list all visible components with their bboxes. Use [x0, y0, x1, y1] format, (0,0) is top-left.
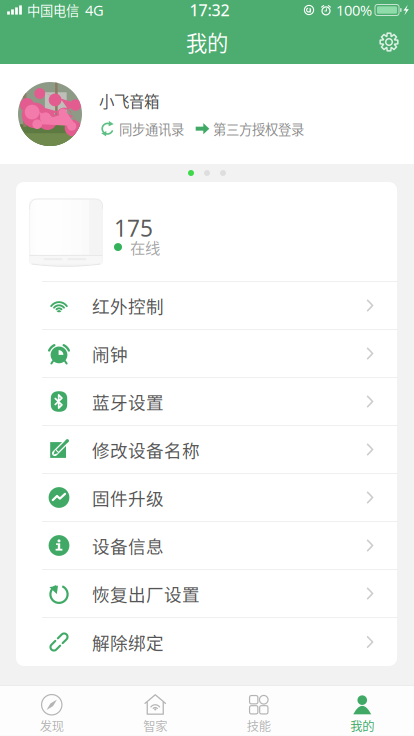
- button[interactable]: 蓝牙设置: [16, 378, 397, 426]
- staticText: 恢复出厂设置: [92, 581, 200, 606]
- staticText: 小飞音箱: [99, 90, 159, 112]
- button[interactable]: 恢复出厂设置: [16, 570, 397, 618]
- staticText: 17:32: [189, 0, 229, 21]
- staticText: 设备信息: [92, 533, 164, 558]
- staticText: 解除绑定: [92, 629, 164, 655]
- button[interactable]: 我的: [310, 686, 414, 736]
- button[interactable]: 设置: [376, 23, 414, 61]
- button[interactable]: 红外控制: [16, 282, 397, 330]
- button[interactable]: 同步通讯录: [99, 119, 184, 138]
- staticText: 发现: [40, 717, 64, 735]
- staticText: 4G: [85, 0, 104, 20]
- staticText: 100%: [336, 0, 372, 20]
- button[interactable]: 闹钟: [16, 330, 397, 378]
- button[interactable]: 固件升级: [16, 474, 397, 522]
- staticText: 我的: [186, 27, 228, 57]
- button[interactable]: 修改设备名称: [16, 426, 397, 474]
- staticText: 智家: [143, 717, 167, 735]
- button[interactable]: 175: [16, 182, 397, 281]
- staticText: 第三方授权登录: [213, 119, 304, 138]
- staticText: 我的: [350, 717, 374, 735]
- button[interactable]: 智家: [103, 686, 207, 736]
- staticText: 同步通讯录: [119, 119, 184, 138]
- staticText: 修改设备名称: [92, 437, 200, 462]
- staticText: 175: [114, 213, 153, 243]
- staticText: 中国电信: [27, 0, 79, 20]
- button[interactable]: 第三方授权登录: [184, 119, 304, 138]
- staticText: 红外控制: [92, 293, 164, 318]
- button[interactable]: 设备信息: [16, 522, 397, 570]
- staticText: 蓝牙设置: [92, 389, 164, 414]
- staticText: 闹钟: [92, 341, 128, 366]
- staticText: 固件升级: [92, 485, 164, 510]
- staticText: 在线: [130, 236, 160, 258]
- staticText: 技能: [247, 717, 271, 735]
- button[interactable]: 技能: [207, 686, 310, 736]
- button[interactable]: 发现: [0, 686, 103, 736]
- button[interactable]: 解除绑定: [16, 618, 397, 666]
